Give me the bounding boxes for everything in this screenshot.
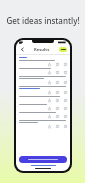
button[interactable]: Share [47,70,51,74]
button[interactable]: Copy [63,62,67,66]
button[interactable]: Share [47,114,51,118]
button[interactable]: Copy [55,98,59,102]
button[interactable]: Share [19,111,67,119]
button[interactable]: Share [47,124,51,128]
button[interactable]: Copy [55,124,59,128]
button[interactable]: Upgrade [59,47,67,52]
button[interactable]: Share [47,62,51,66]
button[interactable]: Share [47,98,51,102]
button[interactable]: Share [47,106,51,110]
button[interactable]: Back [19,46,26,53]
button[interactable]: Copy [55,80,59,84]
button[interactable]: Share [19,103,67,111]
button[interactable]: Copy [63,124,67,128]
staticText: Get ideas instantly! [6,15,80,26]
button[interactable]: Copy [55,106,59,110]
button[interactable]: Copy [55,114,59,118]
button[interactable]: Copy [63,106,67,110]
button[interactable]: Share [19,85,67,95]
button[interactable]: Start again with the results [31,165,56,166]
button[interactable]: Copy [63,90,67,94]
button[interactable]: Copy [63,70,67,74]
button[interactable]: Share [47,80,51,84]
staticText: Results [34,47,50,53]
button[interactable]: Share [47,90,51,94]
button[interactable]: Share [19,67,67,75]
button[interactable]: Copy [63,114,67,118]
button[interactable]: Copy [63,80,67,84]
button[interactable]: Share [19,119,67,129]
button[interactable]: Share [19,75,67,85]
button[interactable]: Copy [55,70,59,74]
button[interactable]: Share [19,59,67,67]
button[interactable]: Copy [55,62,59,66]
button[interactable]: Share [19,95,67,103]
button[interactable]: Copy [63,98,67,102]
button[interactable] [19,156,67,163]
button[interactable]: Copy [55,90,59,94]
